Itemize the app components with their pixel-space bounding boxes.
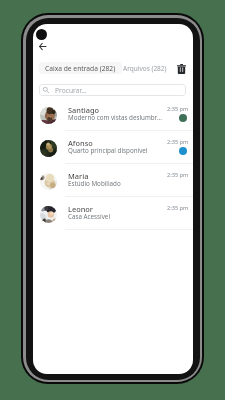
staticText: Quarto principal disponível — [68, 146, 165, 155]
staticText: Leonor — [68, 204, 93, 214]
button[interactable]: Procurar... — [39, 84, 186, 96]
button[interactable]: Back — [35, 39, 50, 54]
button[interactable]: Afonso — [33, 132, 193, 165]
staticText: Procurar... — [55, 86, 87, 95]
staticText: Arquivos (282) — [123, 64, 167, 73]
staticText: Caixa de entrada (282) — [45, 64, 116, 73]
button[interactable]: Leonor — [33, 198, 193, 231]
staticText: 2:35 pm — [167, 105, 189, 113]
staticText: Moderno com vistas deslumbra... — [68, 113, 165, 122]
staticText: Afonso — [68, 138, 93, 148]
button[interactable]: Delete — [174, 62, 188, 76]
button[interactable]: Maria — [33, 165, 193, 198]
staticText: Casa Acessível — [68, 212, 165, 221]
staticText: Estúdio Mobiliado — [68, 179, 165, 188]
button[interactable]: Arquivos (282) — [123, 62, 167, 74]
button[interactable]: Caixa de entrada (282) — [39, 62, 122, 74]
staticText: 2:35 pm — [167, 138, 189, 146]
staticText: 2:35 pm — [167, 171, 189, 179]
staticText: 2:35 pm — [167, 204, 189, 212]
staticText: Santiago — [68, 105, 100, 115]
button[interactable]: Santiago — [33, 99, 193, 132]
staticText: Maria — [68, 171, 89, 181]
